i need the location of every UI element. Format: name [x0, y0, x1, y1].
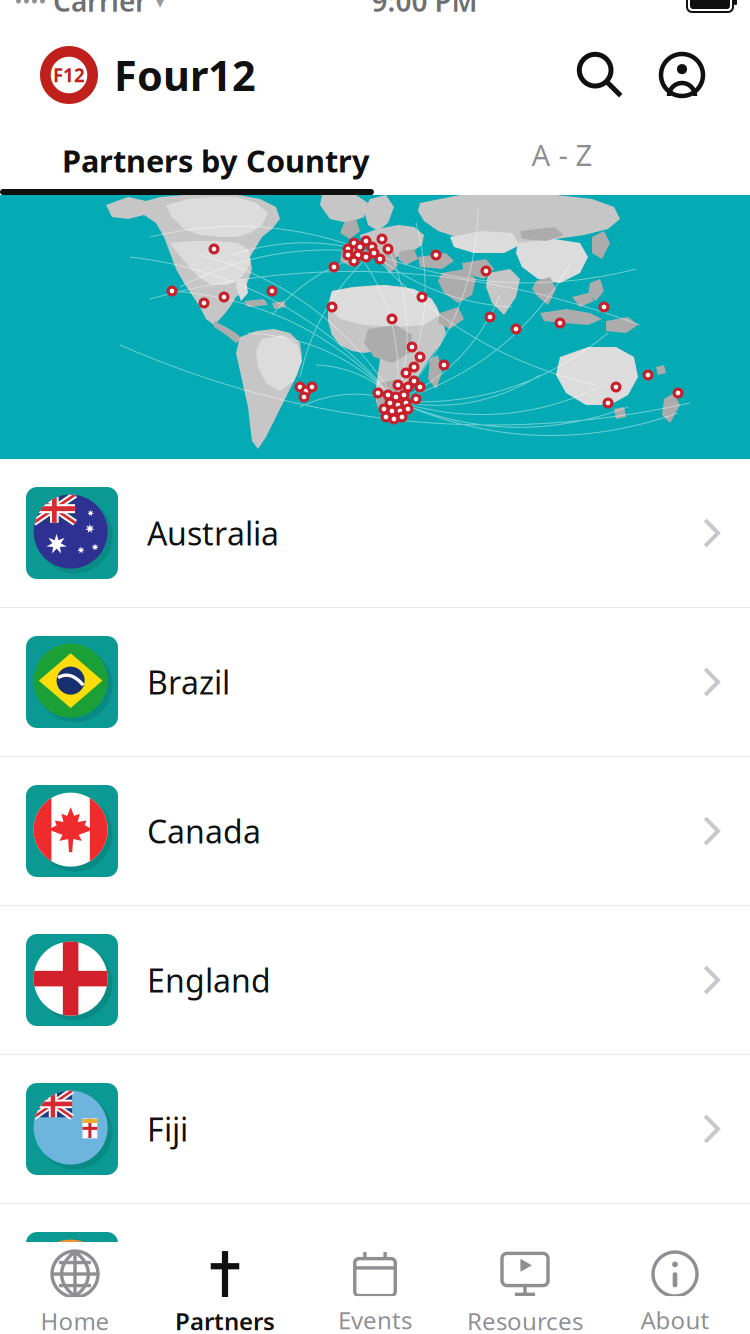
staticText: Carrier — [53, 0, 147, 20]
button[interactable]: Canada — [0, 757, 750, 906]
staticText: England — [147, 959, 271, 1001]
button[interactable]: Partners by Country — [0, 120, 374, 195]
staticText: ▾ — [155, 0, 165, 12]
button[interactable]: Australia — [0, 459, 750, 608]
button[interactable]: Search — [558, 30, 642, 120]
button[interactable]: About — [600, 1245, 750, 1334]
staticText: 9:00 PM — [371, 0, 477, 20]
staticText: Four12 — [114, 48, 256, 102]
button[interactable]: Resources — [450, 1245, 600, 1334]
staticText: Partners — [175, 1305, 275, 1334]
staticText: F12 — [53, 63, 85, 87]
button[interactable]: Partners — [150, 1245, 300, 1334]
button[interactable]: Home — [0, 1245, 150, 1334]
staticText: Home — [40, 1305, 109, 1334]
staticText: A - Z — [531, 135, 592, 174]
button[interactable]: Brazil — [0, 608, 750, 757]
button[interactable]: India — [0, 1204, 750, 1334]
staticText: About — [640, 1304, 709, 1334]
staticText: Events — [338, 1304, 412, 1334]
staticText: Fiji — [147, 1108, 188, 1150]
button[interactable]: Account — [642, 30, 722, 120]
staticText: Brazil — [147, 661, 230, 703]
button[interactable]: A - Z — [374, 120, 750, 195]
button[interactable]: Events — [300, 1245, 450, 1334]
staticText: India — [147, 1257, 224, 1299]
staticText: Canada — [147, 810, 261, 852]
staticText: Resources — [467, 1305, 583, 1334]
staticText: Partners by Country — [62, 140, 370, 181]
staticText: Australia — [147, 512, 279, 554]
button[interactable]: England — [0, 906, 750, 1055]
button[interactable]: Fiji — [0, 1055, 750, 1204]
